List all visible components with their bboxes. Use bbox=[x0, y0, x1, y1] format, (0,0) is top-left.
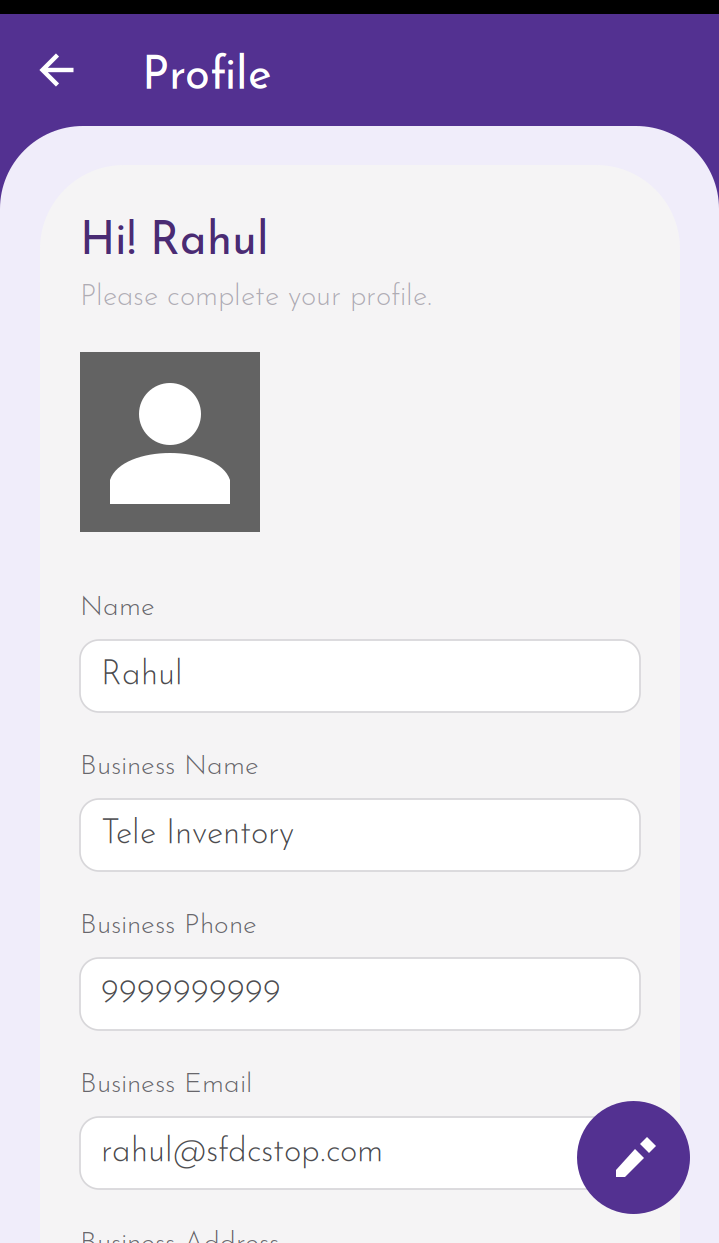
staticText: Name bbox=[80, 594, 155, 622]
staticText: Business Name bbox=[80, 753, 259, 781]
staticText: Tele Inventory bbox=[101, 818, 294, 852]
staticText: Business Address bbox=[80, 1230, 279, 1243]
button[interactable]: Back bbox=[22, 34, 94, 106]
staticText: Business Phone bbox=[80, 912, 257, 940]
staticText: Hi! Rahul bbox=[80, 220, 269, 265]
staticText: rahul@sfdcstop.com bbox=[101, 1136, 383, 1170]
staticText: Profile bbox=[142, 55, 272, 100]
staticText: 9999999999 bbox=[101, 977, 281, 1011]
staticText: Rahul bbox=[101, 659, 183, 693]
button[interactable]: Edit profile bbox=[577, 1101, 690, 1214]
staticText: Please complete your profile. bbox=[80, 283, 432, 312]
staticText: Business Email bbox=[80, 1071, 252, 1099]
